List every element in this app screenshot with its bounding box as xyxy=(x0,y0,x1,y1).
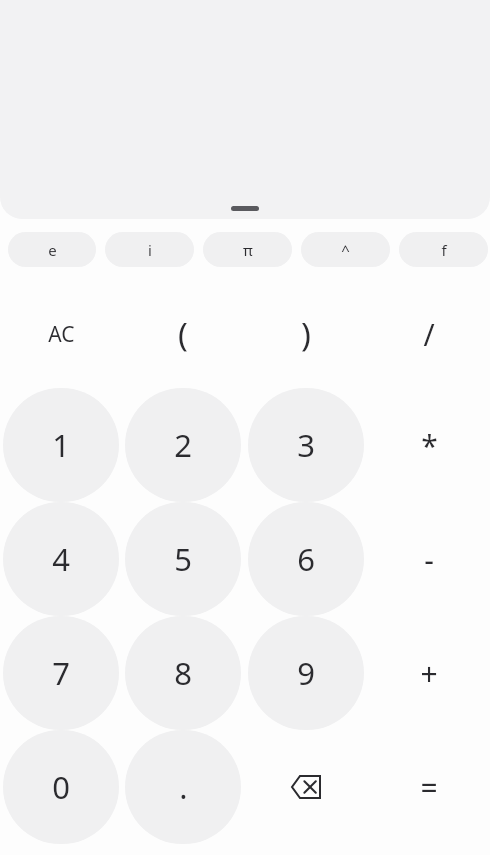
button[interactable]: ^ xyxy=(301,232,390,267)
staticText: 2 xyxy=(174,424,192,466)
staticText: 7 xyxy=(52,652,70,694)
staticText: . xyxy=(179,766,188,808)
staticText: ^ xyxy=(341,240,350,260)
button[interactable]: 9 xyxy=(248,616,364,730)
staticText: i xyxy=(148,240,152,260)
button[interactable]: f xyxy=(399,232,488,267)
button[interactable]: 6 xyxy=(248,502,364,616)
button[interactable]: e xyxy=(8,232,96,267)
staticText: 4 xyxy=(52,538,70,580)
staticText: = xyxy=(420,767,438,808)
staticText: 1 xyxy=(52,424,70,466)
button[interactable]: 1 xyxy=(3,388,119,502)
button[interactable]: 3 xyxy=(248,388,364,502)
button[interactable]: 0 xyxy=(3,730,119,844)
button[interactable]: 5 xyxy=(125,502,241,616)
staticText: 5 xyxy=(174,538,192,580)
staticText: 3 xyxy=(297,424,315,466)
button[interactable]: 8 xyxy=(125,616,241,730)
button[interactable]: ( xyxy=(140,291,226,377)
staticText: π xyxy=(243,240,253,260)
staticText: 6 xyxy=(297,538,315,580)
staticText: - xyxy=(424,539,434,580)
button[interactable]: = xyxy=(379,737,479,837)
button[interactable]: / xyxy=(386,291,472,377)
button[interactable]: Expand display xyxy=(0,0,490,219)
staticText: + xyxy=(420,653,438,694)
staticText: AC xyxy=(48,320,75,349)
button[interactable]: π xyxy=(203,232,292,267)
staticText: 0 xyxy=(52,766,70,808)
button[interactable]: * xyxy=(379,395,479,495)
staticText: / xyxy=(423,314,435,355)
staticText: * xyxy=(421,425,438,466)
button[interactable]: AC xyxy=(18,291,104,377)
button[interactable]: 7 xyxy=(3,616,119,730)
staticText: 8 xyxy=(174,652,192,694)
button[interactable]: ) xyxy=(263,291,349,377)
button[interactable]: . xyxy=(125,730,241,844)
button[interactable]: 2 xyxy=(125,388,241,502)
staticText: f xyxy=(441,240,447,260)
staticText: ) xyxy=(301,312,311,357)
button[interactable]: Backspace xyxy=(256,737,356,837)
button[interactable]: i xyxy=(105,232,194,267)
staticText: 9 xyxy=(297,652,315,694)
staticText: e xyxy=(48,240,57,260)
button[interactable]: 4 xyxy=(3,502,119,616)
staticText: ( xyxy=(178,312,188,357)
button[interactable]: + xyxy=(379,623,479,723)
button[interactable]: - xyxy=(379,509,479,609)
other: Expand display xyxy=(231,206,259,211)
